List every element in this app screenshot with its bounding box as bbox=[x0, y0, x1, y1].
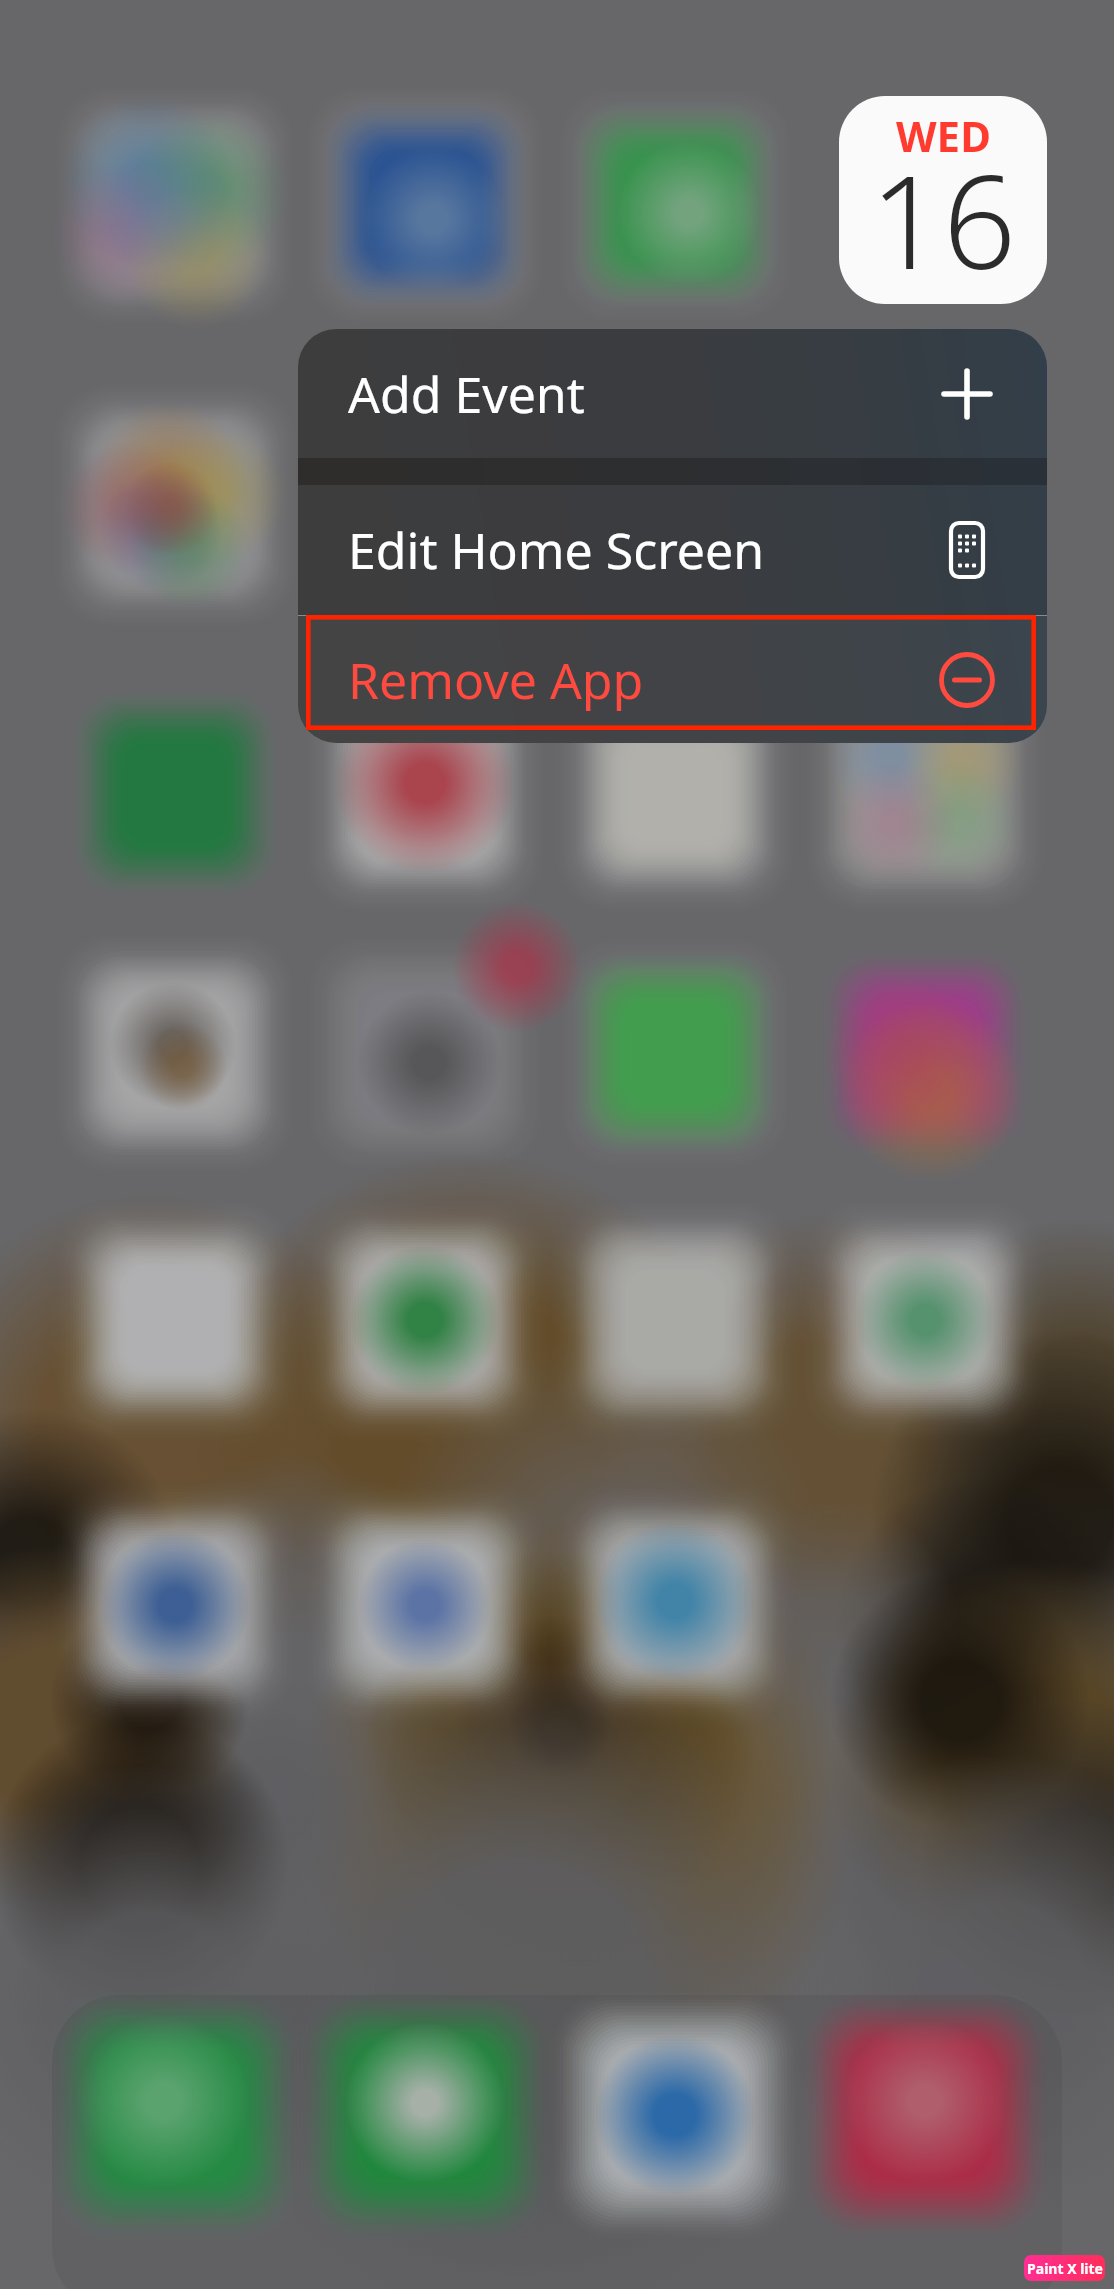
button[interactable]: Add Event bbox=[298, 329, 1047, 458]
staticText: Edit Home Screen bbox=[348, 516, 937, 584]
staticText: 16 bbox=[870, 132, 1017, 304]
button[interactable]: Remove App bbox=[298, 616, 1047, 743]
staticText: Add Event bbox=[348, 360, 937, 428]
staticText: WED bbox=[896, 107, 991, 164]
button[interactable]: Edit Home Screen bbox=[298, 485, 1047, 615]
button[interactable]: Calendar app bbox=[839, 96, 1047, 304]
staticText: Remove App bbox=[348, 646, 937, 714]
staticText: Paint X lite bbox=[1027, 2259, 1103, 2278]
